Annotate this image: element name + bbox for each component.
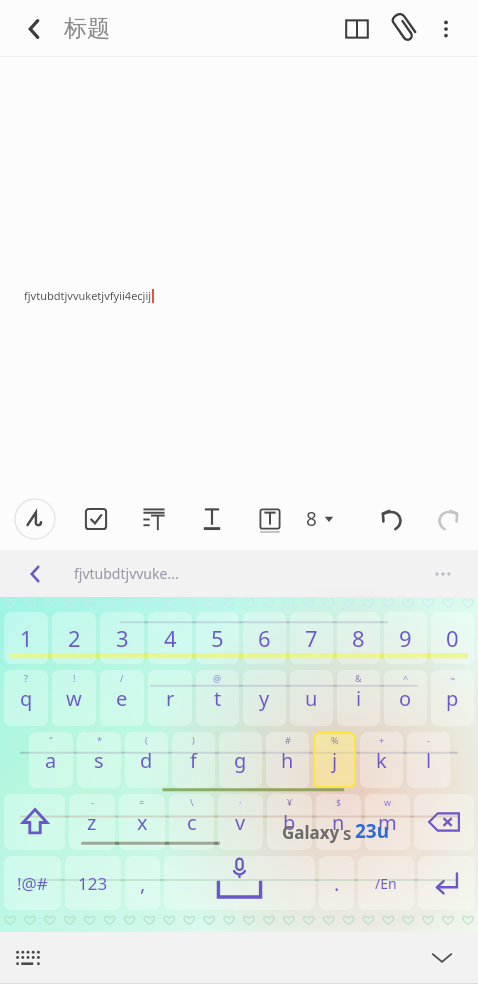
button[interactable]: q — [4, 670, 48, 726]
staticText: s — [94, 747, 104, 774]
button[interactable]: 3 — [100, 612, 144, 664]
button[interactable]: . — [319, 856, 354, 910]
staticText: m — [378, 809, 397, 836]
staticText: f — [190, 747, 197, 774]
button[interactable]: 1 — [4, 612, 48, 664]
button[interactable]: 9 — [384, 612, 427, 664]
button[interactable]: s — [77, 732, 121, 788]
staticText: r — [166, 685, 175, 712]
staticText: ) — [192, 734, 195, 746]
staticText: / — [120, 672, 124, 684]
button[interactable]: i — [337, 670, 380, 726]
button[interactable]: Text box — [250, 499, 290, 539]
button[interactable]: 0 — [431, 612, 474, 664]
staticText: e — [116, 685, 128, 712]
button[interactable]: 5 — [196, 612, 239, 664]
button[interactable] — [414, 794, 474, 850]
button[interactable]: Text format — [192, 499, 232, 539]
button[interactable]: More suggestions — [426, 557, 460, 591]
button[interactable]: w — [52, 670, 96, 726]
staticText: \ — [190, 796, 194, 808]
button[interactable]: j — [313, 732, 356, 788]
button[interactable]: Reading view — [334, 6, 380, 52]
button[interactable]: f — [172, 732, 215, 788]
button[interactable]: h — [266, 732, 309, 788]
button[interactable]: /En — [358, 856, 414, 910]
button[interactable]: m — [365, 794, 410, 850]
button[interactable]: v — [218, 794, 263, 850]
button[interactable]: Hide keyboard — [420, 936, 464, 980]
staticText: · — [239, 796, 242, 808]
staticText: w — [384, 796, 392, 808]
staticText: /En — [375, 874, 397, 893]
staticText: h — [281, 747, 294, 774]
staticText: S — [343, 824, 352, 844]
button[interactable]: a — [29, 732, 73, 788]
button[interactable]: y — [243, 670, 286, 726]
button[interactable]: More options — [426, 9, 466, 49]
button[interactable]: , — [125, 856, 160, 910]
button[interactable]: Checklist — [76, 499, 116, 539]
button[interactable]: Redo — [426, 498, 468, 540]
staticText: o — [399, 685, 412, 712]
button[interactable]: 4 — [148, 612, 192, 664]
button[interactable]: x — [119, 794, 165, 850]
button[interactable]: p — [431, 670, 474, 726]
staticText: " — [49, 734, 53, 746]
button[interactable]: 7 — [290, 612, 333, 664]
button[interactable]: b — [267, 794, 312, 850]
button[interactable]: Paragraph style — [134, 499, 174, 539]
staticText: j — [332, 747, 338, 774]
staticText: * — [97, 734, 102, 746]
button[interactable]: g — [219, 732, 262, 788]
button[interactable] — [4, 794, 65, 850]
staticText: i — [356, 685, 362, 712]
button[interactable]: Undo — [372, 498, 414, 540]
staticText: v — [235, 809, 246, 836]
staticText: $ — [336, 796, 342, 808]
button[interactable]: Attach — [380, 6, 426, 52]
staticText: fjvtubdtjvvuke... — [74, 564, 179, 583]
staticText: g — [234, 747, 247, 774]
button[interactable]: c — [169, 794, 214, 850]
button[interactable]: o — [384, 670, 427, 726]
button[interactable]: u — [290, 670, 333, 726]
staticText: n — [332, 809, 345, 836]
button[interactable]: Back — [12, 7, 56, 51]
button[interactable]: !@# — [4, 856, 61, 910]
button[interactable]: Switch keyboard — [8, 938, 48, 978]
button[interactable]: 8 — [302, 499, 338, 539]
button[interactable]: z — [69, 794, 115, 850]
staticText: d — [140, 747, 153, 774]
button[interactable]: Handwriting — [14, 498, 56, 540]
staticText: 标题 — [64, 14, 110, 43]
button[interactable]: n — [316, 794, 361, 850]
button[interactable]: r — [148, 670, 192, 726]
staticText: 123 — [78, 872, 108, 895]
button[interactable]: l — [407, 732, 450, 788]
button[interactable]: 2 — [52, 612, 96, 664]
button[interactable]: d — [125, 732, 168, 788]
button[interactable]: e — [100, 670, 144, 726]
staticText: q — [20, 685, 33, 712]
staticText: 4 — [164, 623, 177, 653]
staticText: ¥ — [287, 796, 293, 808]
button[interactable]: 123 — [65, 856, 121, 910]
staticText: Galaxy — [282, 821, 340, 844]
staticText: u — [305, 685, 318, 712]
button[interactable]: Previous suggestion — [18, 557, 52, 591]
button[interactable]: 6 — [243, 612, 286, 664]
button[interactable]: k — [360, 732, 403, 788]
staticText: 23u — [355, 818, 390, 844]
staticText: a — [45, 747, 57, 774]
button[interactable] — [418, 856, 474, 910]
staticText: 8 — [306, 506, 317, 532]
staticText: l — [426, 747, 432, 774]
staticText: z — [87, 809, 97, 836]
button[interactable]: 8 — [337, 612, 380, 664]
button[interactable]: fjvtubdtjvvuke... — [74, 550, 426, 597]
button[interactable] — [164, 856, 315, 910]
staticText: 5 — [211, 623, 224, 653]
staticText: !@# — [17, 872, 48, 895]
button[interactable]: t — [196, 670, 239, 726]
